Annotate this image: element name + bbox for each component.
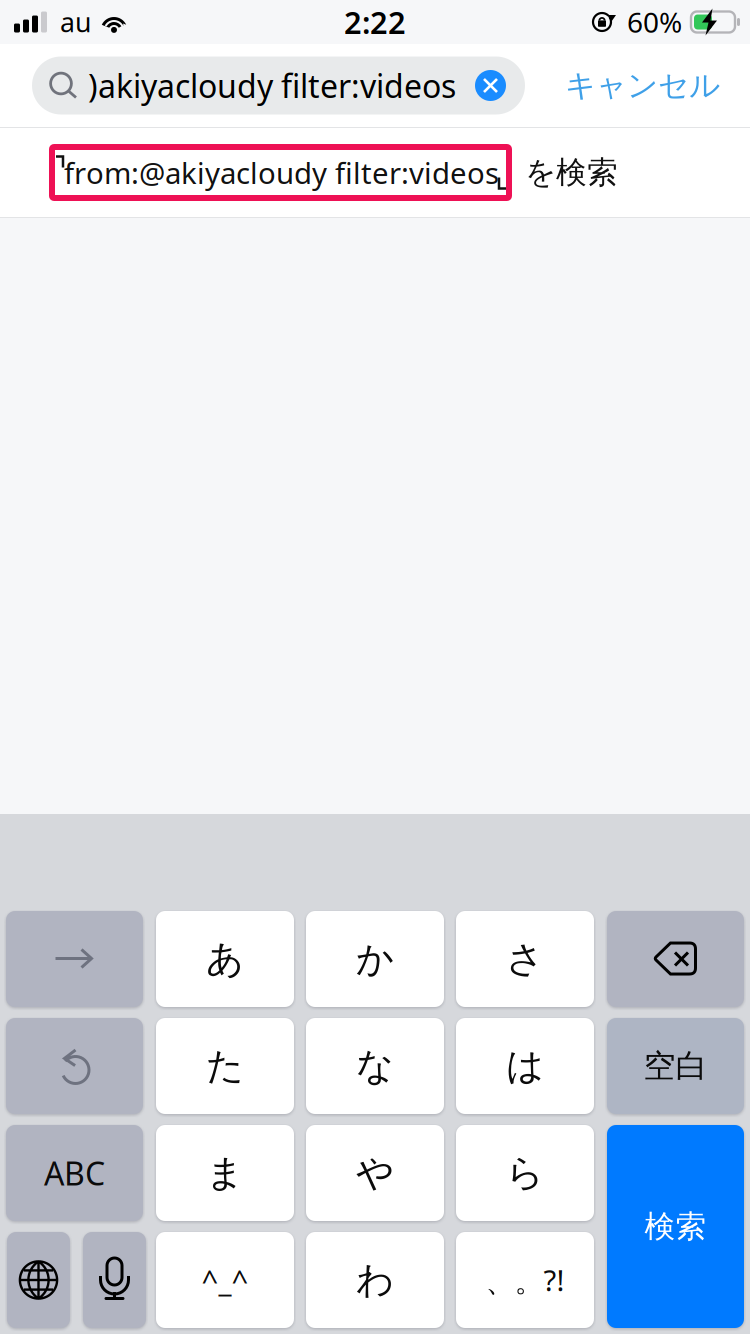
- staticText: を検索: [525, 154, 618, 191]
- staticText: キャンセル: [565, 67, 720, 104]
- staticText: は: [506, 1043, 544, 1089]
- button[interactable]: な: [306, 1018, 444, 1114]
- button[interactable]: か: [306, 911, 444, 1007]
- button[interactable]: ま: [156, 1125, 294, 1221]
- staticText: au: [60, 4, 91, 40]
- button[interactable]: ら: [456, 1125, 594, 1221]
- button[interactable]: ^_^: [156, 1232, 294, 1328]
- button[interactable]: キャンセル: [565, 67, 720, 104]
- button[interactable]: Undo: [6, 1018, 143, 1114]
- staticText: か: [356, 936, 394, 982]
- staticText: 、。?!: [485, 1260, 564, 1299]
- staticText: や: [356, 1150, 394, 1196]
- staticText: ら: [506, 1150, 544, 1196]
- staticText: あ: [206, 936, 244, 982]
- staticText: )akiyacloudy filter:videos: [88, 64, 456, 107]
- staticText: わ: [356, 1257, 394, 1303]
- button[interactable]: は: [456, 1018, 594, 1114]
- staticText: 60%: [627, 3, 682, 41]
- button[interactable]: や: [306, 1125, 444, 1221]
- staticText: ABC: [44, 1152, 105, 1194]
- button[interactable]: Delete: [607, 911, 744, 1007]
- button[interactable]: た: [156, 1018, 294, 1114]
- staticText: な: [356, 1043, 394, 1089]
- staticText: 空白: [643, 1046, 707, 1086]
- button[interactable]: 、。?!: [456, 1232, 594, 1328]
- button[interactable]: Clear text: [475, 70, 506, 101]
- staticText: た: [206, 1043, 244, 1089]
- button[interactable]: Next keyboard: [7, 1232, 70, 1328]
- button[interactable]: Next candidate: [6, 911, 143, 1007]
- button[interactable]: あ: [156, 911, 294, 1007]
- button[interactable]: さ: [456, 911, 594, 1007]
- button[interactable]: わ: [306, 1232, 444, 1328]
- staticText: ま: [206, 1150, 244, 1196]
- button[interactable]: 空白: [607, 1018, 744, 1114]
- button[interactable]: from:@akiyacloudy filter:videos: [0, 128, 750, 217]
- staticText: from:@akiyacloudy filter:videos: [64, 153, 499, 192]
- button[interactable]: ABC: [6, 1125, 143, 1221]
- staticText: 検索: [644, 1208, 706, 1245]
- staticText: ^_^: [201, 1260, 248, 1299]
- button[interactable]: Dictation: [83, 1232, 146, 1328]
- staticText: 2:22: [344, 2, 406, 42]
- staticText: さ: [506, 936, 544, 982]
- button[interactable]: 検索: [607, 1125, 744, 1328]
